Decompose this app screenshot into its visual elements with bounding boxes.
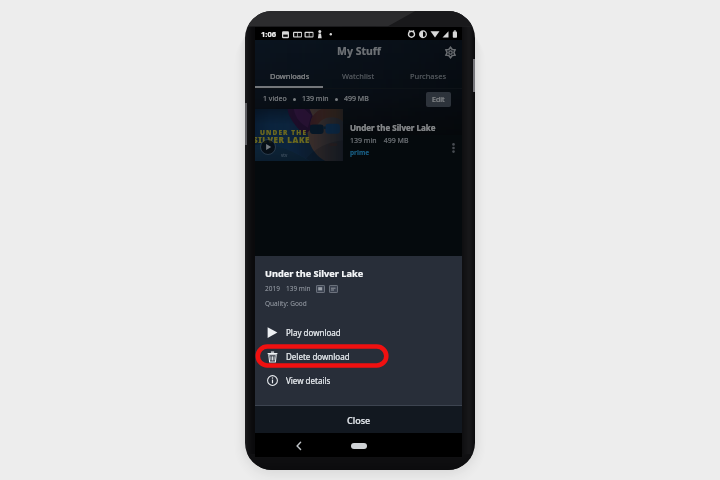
staticText: View details bbox=[286, 375, 331, 386]
button[interactable]: Settings bbox=[440, 42, 460, 62]
staticText: 1 video bbox=[263, 94, 287, 104]
button[interactable]: Close bbox=[255, 406, 462, 433]
staticText: Delete download bbox=[286, 351, 350, 362]
staticText: 139 min bbox=[302, 94, 329, 104]
staticText: prime bbox=[350, 148, 370, 157]
button[interactable]: Play bbox=[260, 139, 276, 155]
staticText: My Stuff bbox=[337, 44, 381, 58]
button[interactable]: Home bbox=[351, 443, 367, 449]
staticText: UNDER THE bbox=[260, 128, 308, 137]
button[interactable]: UNDER THE bbox=[255, 109, 462, 161]
staticText: Play download bbox=[286, 327, 341, 338]
button[interactable]: Purchases bbox=[393, 64, 462, 88]
staticText: Edit bbox=[432, 95, 445, 105]
button[interactable]: View details bbox=[255, 368, 462, 392]
button[interactable]: Downloads bbox=[255, 64, 324, 88]
button[interactable]: Back bbox=[291, 438, 307, 454]
staticText: Downloads bbox=[270, 71, 310, 81]
staticText: 2019 bbox=[265, 284, 280, 293]
staticText: Watchlist bbox=[342, 71, 375, 81]
staticText: Quality: Good bbox=[265, 299, 307, 308]
button[interactable]: More options bbox=[445, 109, 462, 161]
staticText: 499 MB bbox=[344, 94, 369, 104]
button[interactable]: Edit bbox=[426, 92, 451, 107]
staticText: 139 min bbox=[286, 284, 311, 293]
staticText: SILVER LAKE bbox=[255, 134, 311, 145]
button[interactable]: Watchlist bbox=[324, 64, 393, 88]
staticText: Purchases bbox=[410, 71, 446, 81]
staticText: Under the Silver Lake bbox=[350, 122, 436, 133]
staticText: Close bbox=[347, 414, 371, 426]
staticText: 1:06 bbox=[261, 29, 276, 39]
staticText: Under the Silver Lake bbox=[265, 267, 364, 280]
button[interactable]: Play download bbox=[255, 320, 462, 344]
staticText: 139 min 499 MB bbox=[350, 136, 409, 146]
staticText: vtv bbox=[281, 152, 288, 158]
button[interactable]: Delete download bbox=[255, 344, 462, 368]
